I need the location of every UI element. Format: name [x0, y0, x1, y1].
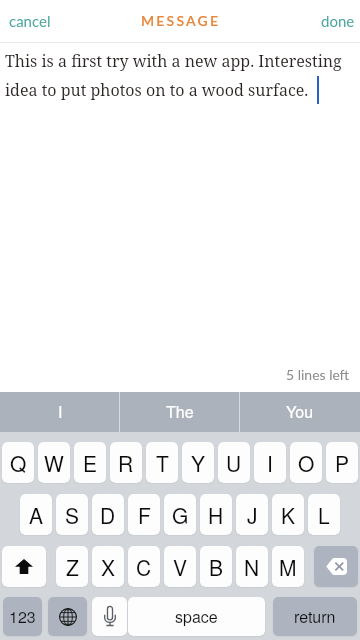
staticText: done	[321, 12, 355, 30]
staticText: T	[156, 448, 169, 478]
button[interactable]: V	[164, 546, 196, 587]
staticText: W	[44, 448, 64, 478]
button[interactable]: T	[146, 442, 178, 483]
button[interactable]: P	[326, 442, 358, 483]
button[interactable]: B	[200, 546, 232, 587]
button[interactable]: G	[164, 494, 196, 535]
staticText: P	[335, 448, 350, 478]
button[interactable]: R	[110, 442, 142, 483]
staticText: I	[58, 400, 63, 423]
staticText: U	[226, 448, 242, 478]
staticText: J	[247, 500, 258, 530]
button[interactable]: N	[236, 546, 268, 587]
staticText: Y	[191, 448, 206, 478]
staticText: D	[100, 500, 116, 530]
button[interactable]: D	[92, 494, 124, 535]
button[interactable]: Shift	[2, 546, 46, 587]
staticText: cancel	[9, 12, 51, 30]
button[interactable]: C	[128, 546, 160, 587]
staticText: Q	[10, 448, 27, 478]
staticText: B	[209, 552, 224, 582]
staticText: G	[172, 500, 189, 530]
button[interactable]: Backspace	[314, 546, 358, 587]
staticText: 5 lines left	[286, 366, 350, 383]
button[interactable]: M	[272, 546, 304, 587]
button[interactable]: Switch keyboard language	[48, 597, 87, 636]
staticText: H	[208, 500, 224, 530]
button[interactable]: done	[311, 5, 360, 37]
staticText: F	[138, 500, 151, 530]
button[interactable]: A	[20, 494, 52, 535]
staticText: M	[279, 552, 297, 582]
button[interactable]: F	[128, 494, 160, 535]
staticText: Z	[66, 552, 79, 582]
button[interactable]: E	[74, 442, 106, 483]
button[interactable]: X	[92, 546, 124, 587]
staticText: return	[294, 605, 336, 628]
staticText: L	[318, 500, 330, 530]
button[interactable]: Q	[2, 442, 34, 483]
button[interactable]: H	[200, 494, 232, 535]
button[interactable]: Z	[56, 546, 88, 587]
staticText: E	[83, 448, 98, 478]
staticText: X	[101, 552, 116, 582]
staticText: O	[298, 448, 315, 478]
button[interactable]: You	[240, 392, 360, 432]
staticText: K	[281, 500, 296, 530]
staticText: S	[65, 500, 80, 530]
button[interactable]: O	[290, 442, 322, 483]
staticText: space	[175, 605, 218, 628]
button[interactable]: Voice input	[92, 597, 127, 636]
button[interactable]: I	[254, 442, 286, 483]
button[interactable]: S	[56, 494, 88, 535]
staticText: V	[173, 552, 188, 582]
button[interactable]: J	[236, 494, 268, 535]
staticText: You	[286, 400, 314, 423]
staticText: idea to put photos on to a wood surface.	[5, 79, 309, 101]
button[interactable]: Y	[182, 442, 214, 483]
staticText: A	[29, 500, 44, 530]
button[interactable]: 123	[3, 597, 42, 636]
staticText: This is a first try with a new app. Inte…	[5, 50, 342, 72]
staticText: The	[166, 400, 194, 423]
button[interactable]: space	[128, 597, 265, 636]
button[interactable]: The	[120, 392, 240, 432]
button[interactable]: W	[38, 442, 70, 483]
button[interactable]: L	[308, 494, 340, 535]
button[interactable]: U	[218, 442, 250, 483]
staticText: 123	[9, 605, 36, 628]
staticText: C	[136, 552, 152, 582]
staticText: R	[118, 448, 134, 478]
staticText: N	[244, 552, 260, 582]
staticText: MESSAGE	[141, 12, 221, 29]
button[interactable]: I	[0, 392, 120, 432]
button[interactable]: K	[272, 494, 304, 535]
button[interactable]: cancel	[0, 5, 61, 37]
staticText: I	[267, 448, 273, 478]
button[interactable]: return	[273, 597, 357, 636]
